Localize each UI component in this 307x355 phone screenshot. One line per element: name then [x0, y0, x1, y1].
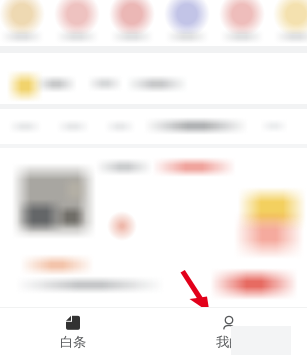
button[interactable]: 白条 — [42, 312, 104, 354]
button[interactable]: Action — [210, 268, 298, 300]
button[interactable]: Shortcut — [108, 0, 156, 46]
button[interactable]: Notice — [0, 53, 307, 104]
button[interactable]: Shortcut — [53, 0, 101, 46]
staticText: 白条 — [60, 334, 86, 350]
button[interactable]: Shortcut — [272, 0, 307, 46]
button[interactable]: Shortcut — [218, 0, 266, 46]
button[interactable]: 我的 — [198, 312, 260, 354]
staticText: 我的 — [216, 334, 242, 350]
button[interactable]: Shortcut — [163, 0, 211, 46]
button[interactable]: Shortcut — [0, 0, 46, 46]
